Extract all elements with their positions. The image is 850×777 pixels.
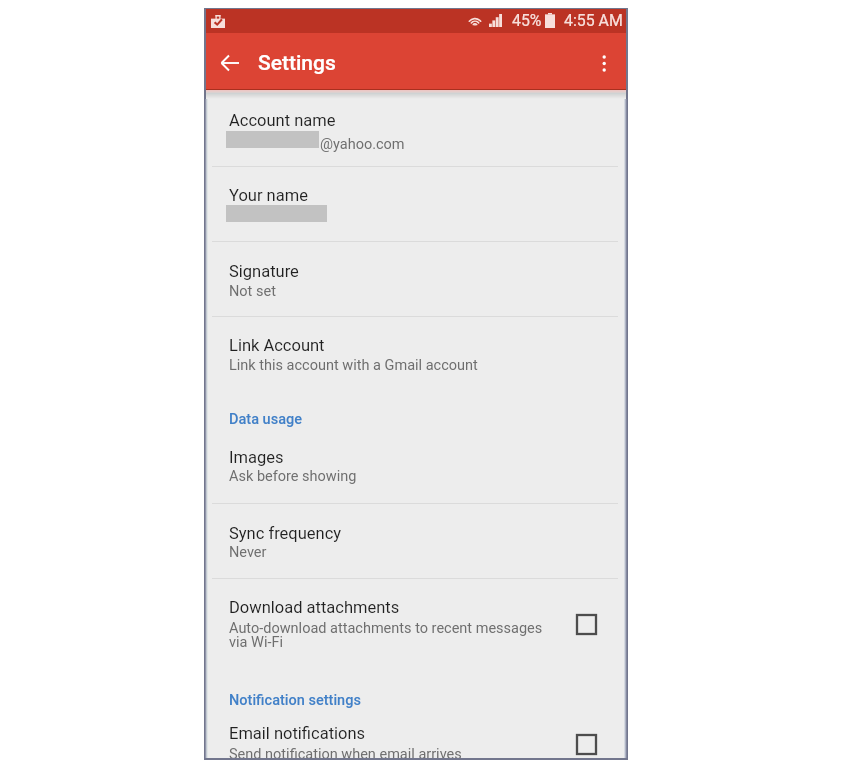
button[interactable]: Signature xyxy=(204,242,628,316)
staticText: Images xyxy=(229,448,284,467)
staticText: Not set xyxy=(229,283,276,300)
button[interactable]: Link Account xyxy=(204,317,628,395)
staticText: @yahoo.com xyxy=(320,136,405,153)
button[interactable]: Sync frequency xyxy=(204,504,628,578)
button[interactable]: Email notifications xyxy=(204,718,628,760)
button[interactable]: More options xyxy=(584,44,624,84)
staticText: Data usage xyxy=(229,411,303,428)
staticText: Settings xyxy=(258,51,336,76)
staticText: Account name xyxy=(229,111,336,130)
staticText: Email notifications xyxy=(229,724,366,743)
staticText: Link this account with a Gmail account xyxy=(229,357,478,374)
staticText: Link Account xyxy=(229,336,325,355)
button[interactable]: Toggle setting xyxy=(567,605,606,644)
button[interactable]: Your name xyxy=(204,167,628,241)
staticText: 4:55 AM xyxy=(564,11,623,30)
staticText: Notification settings xyxy=(229,692,361,709)
staticText: 45% xyxy=(512,11,542,30)
staticText: Ask before showing xyxy=(229,468,357,485)
button[interactable]: Images xyxy=(204,437,628,503)
staticText: Sync frequency xyxy=(229,524,342,543)
button[interactable]: Toggle setting xyxy=(567,725,606,764)
staticText: Never xyxy=(229,544,267,561)
button[interactable]: Download attachments xyxy=(204,579,628,664)
button[interactable]: Account name xyxy=(204,99,628,166)
staticText: Your name xyxy=(229,186,308,205)
staticText: Download attachments xyxy=(229,598,400,617)
button[interactable]: Navigate up xyxy=(216,45,252,81)
staticText: Send notification when email arrives xyxy=(229,746,462,763)
staticText: Signature xyxy=(229,262,299,281)
staticText: Auto-download attachments to recent mess… xyxy=(229,620,543,651)
